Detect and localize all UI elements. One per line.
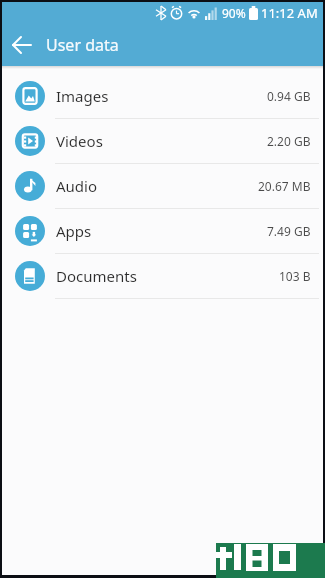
button[interactable]: Videos [2, 119, 323, 163]
button[interactable]: User data [2, 24, 323, 66]
staticText: Apps [56, 221, 92, 241]
staticText: 0.94 GB [267, 88, 311, 104]
staticText: Images [56, 86, 109, 106]
staticText: 7.49 GB [267, 223, 311, 239]
staticText: Audio [56, 176, 98, 196]
staticText: 2.20 GB [267, 133, 311, 149]
staticText: Videos [56, 131, 103, 151]
staticText: 11:12 AM [261, 4, 318, 22]
staticText: 103 B [279, 268, 311, 284]
staticText: User data [46, 34, 119, 56]
button[interactable]: Audio [2, 164, 323, 208]
button[interactable]: Images [2, 74, 323, 118]
button[interactable]: Apps [2, 209, 323, 253]
staticText: Documents [56, 266, 137, 286]
button[interactable] [12, 35, 32, 55]
staticText: 90% [222, 5, 246, 21]
staticText: 20.67 MB [258, 178, 311, 194]
button[interactable]: Documents [2, 254, 323, 298]
